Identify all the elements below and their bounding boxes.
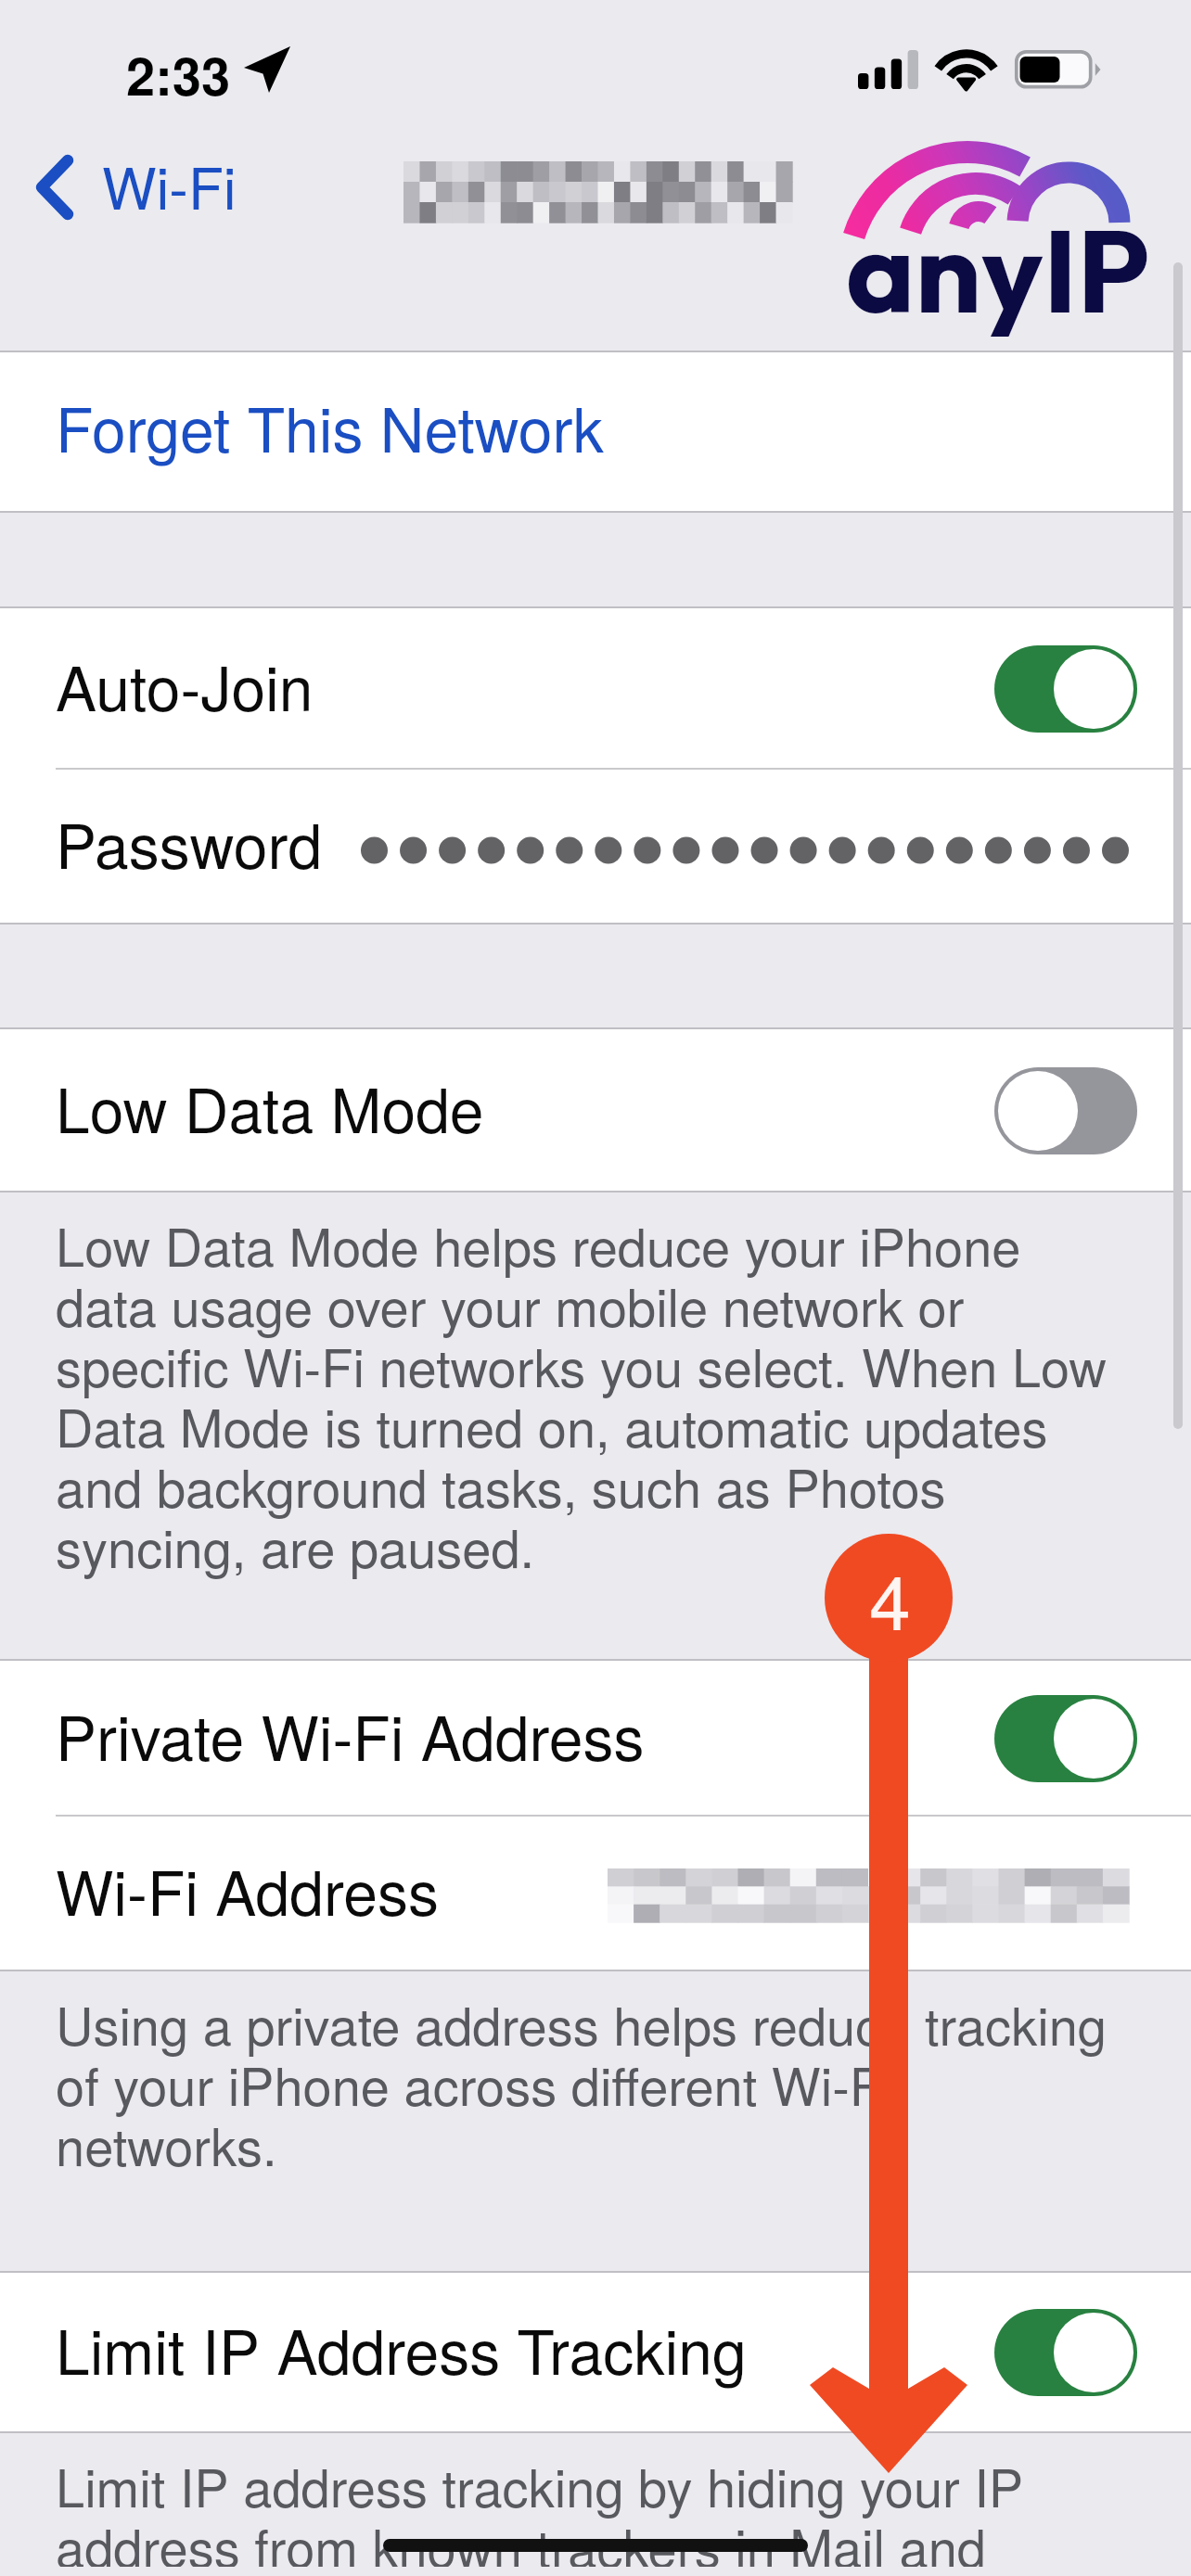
button[interactable]: Private Wi-Fi Address xyxy=(0,1661,1191,1815)
button[interactable]: Switch on xyxy=(994,1695,1137,1782)
staticText: Private Wi-Fi Address xyxy=(56,1690,645,1779)
staticText: 4 xyxy=(869,1545,911,1651)
button[interactable]: Low Data Mode xyxy=(0,1029,1191,1191)
button[interactable]: Switch off xyxy=(994,1067,1137,1154)
button[interactable]: Back to Wi-Fi xyxy=(0,152,237,235)
staticText: Low Data Mode helps reduce your iPhone d… xyxy=(56,1207,1118,1583)
button[interactable]: Auto-Join xyxy=(0,608,1191,768)
staticText: Wi-Fi Address xyxy=(56,1845,440,1933)
staticText: Forget This Network xyxy=(56,382,604,470)
staticText: Password xyxy=(56,798,323,886)
staticText: 2:33 xyxy=(126,37,231,111)
button[interactable]: Switch on xyxy=(994,2309,1137,2396)
staticText: Limit IP address tracking by hiding your… xyxy=(56,2448,1118,2567)
staticText: Low Data Mode xyxy=(56,1063,484,1151)
button[interactable]: Limit IP Address Tracking xyxy=(0,2273,1191,2431)
button[interactable]: Wi-Fi Address xyxy=(0,1817,1191,1970)
button[interactable]: Switch on xyxy=(994,645,1137,733)
button[interactable]: Password xyxy=(0,770,1191,923)
staticText: Wi-Fi xyxy=(102,144,237,226)
staticText: Limit IP Address Tracking xyxy=(56,2304,747,2392)
staticText: Auto-Join xyxy=(56,641,314,729)
staticText: anyIP xyxy=(846,197,1150,343)
button[interactable]: Forget This Network xyxy=(0,352,1191,511)
staticText: Using a private address helps reduce tra… xyxy=(56,1986,1118,2181)
